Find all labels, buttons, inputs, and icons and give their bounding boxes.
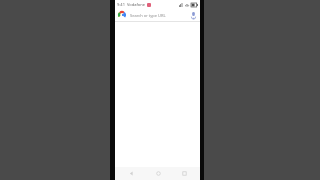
staticText: Search or type URL	[130, 13, 166, 18]
other: Google	[118, 11, 126, 19]
staticText: 9:41	[117, 2, 125, 7]
staticText: Vodafone	[127, 2, 145, 7]
button[interactable]: Recent apps	[174, 167, 194, 180]
button[interactable]: Home	[148, 167, 168, 180]
button[interactable]: Google	[115, 9, 200, 21]
button[interactable]: Back	[121, 167, 141, 180]
button[interactable]: Voice search	[189, 11, 197, 19]
